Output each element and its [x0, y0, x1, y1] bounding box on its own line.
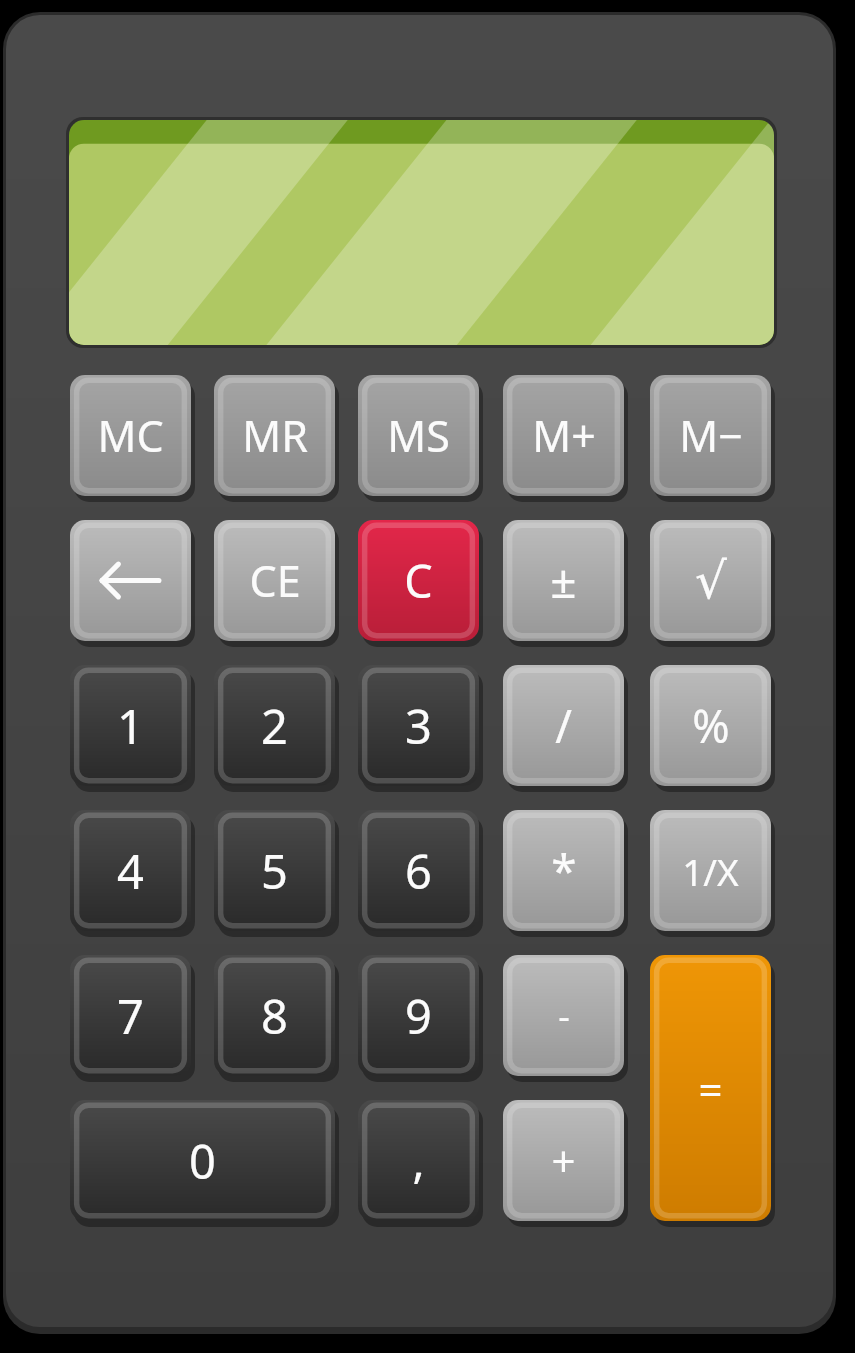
staticText: 5	[261, 839, 288, 903]
staticText: 6	[405, 839, 432, 903]
button[interactable]: 8	[214, 955, 335, 1076]
button[interactable]: M+	[503, 375, 624, 496]
staticText: ,	[412, 1130, 425, 1191]
staticText: %	[692, 695, 730, 756]
staticText: ±	[550, 549, 577, 612]
staticText: /	[555, 695, 572, 756]
button[interactable]: ±	[503, 520, 624, 641]
button[interactable]: %	[650, 665, 771, 786]
button[interactable]: MS	[358, 375, 479, 496]
staticText: MS	[387, 406, 450, 465]
button[interactable]: +	[503, 1100, 624, 1221]
staticText: 2	[261, 694, 288, 758]
staticText: MC	[97, 406, 164, 465]
staticText: MR	[242, 406, 308, 465]
staticText: C	[404, 550, 433, 611]
button[interactable]: 9	[358, 955, 479, 1076]
button[interactable]: Backspace	[70, 520, 191, 641]
staticText: 8	[261, 984, 288, 1048]
staticText: M−	[679, 406, 743, 465]
button[interactable]: -	[503, 955, 624, 1076]
staticText: 1/X	[682, 846, 739, 896]
button[interactable]: 7	[70, 955, 191, 1076]
button[interactable]: 2	[214, 665, 335, 786]
staticText: *	[551, 839, 577, 902]
button[interactable]: CE	[214, 520, 335, 641]
staticText: 9	[405, 984, 432, 1048]
button[interactable]: /	[503, 665, 624, 786]
staticText: 3	[405, 694, 432, 758]
staticText: 7	[117, 984, 144, 1048]
button[interactable]: √	[650, 520, 771, 641]
staticText: √	[695, 552, 727, 610]
button[interactable]: C	[358, 520, 479, 641]
button[interactable]: 0	[70, 1100, 335, 1221]
staticText: M+	[532, 406, 596, 465]
button[interactable]: M−	[650, 375, 771, 496]
button[interactable]: *	[503, 810, 624, 931]
button[interactable]: ,	[358, 1100, 479, 1221]
staticText: 1	[117, 694, 144, 758]
staticText: +	[551, 1132, 576, 1189]
button[interactable]: 6	[358, 810, 479, 931]
staticText: CE	[249, 551, 301, 610]
button[interactable]: 3	[358, 665, 479, 786]
button[interactable]: MR	[214, 375, 335, 496]
staticText: =	[698, 1060, 723, 1117]
button[interactable]: 4	[70, 810, 191, 931]
button[interactable]: =	[650, 955, 771, 1221]
button[interactable]: 1/X	[650, 810, 771, 931]
button[interactable]: 5	[214, 810, 335, 931]
staticText: 0	[189, 1129, 216, 1193]
button[interactable]: 1	[70, 665, 191, 786]
staticText: 4	[117, 839, 144, 903]
button[interactable]: MC	[70, 375, 191, 496]
staticText: -	[558, 991, 570, 1040]
